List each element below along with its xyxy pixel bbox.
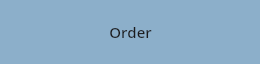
staticText: Order: [109, 22, 152, 42]
button[interactable]: Order: [0, 0, 260, 64]
